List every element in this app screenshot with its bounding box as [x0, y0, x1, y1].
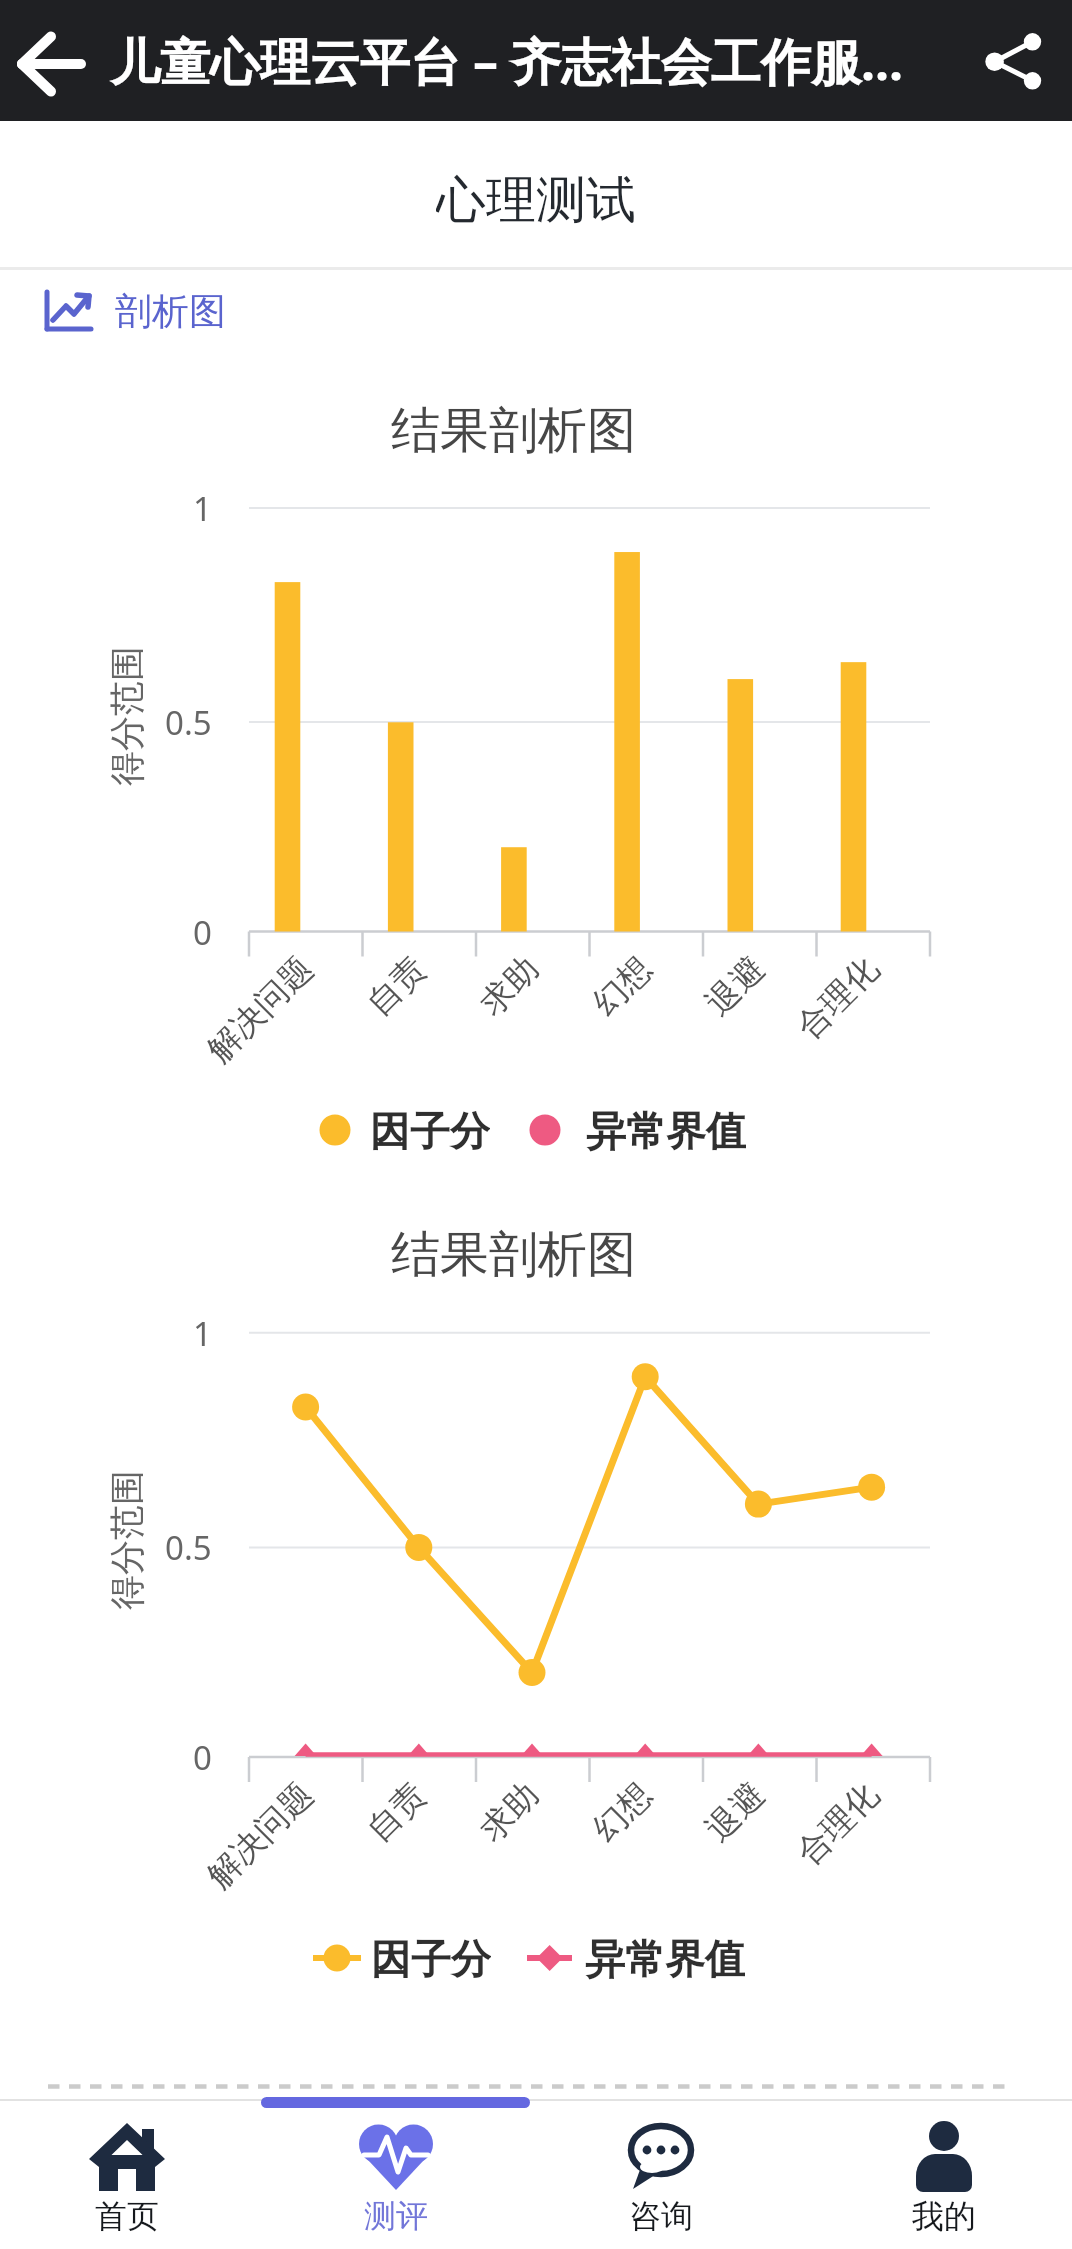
staticText: 退避 [697, 948, 772, 1023]
staticText: 结果剖析图 [391, 400, 636, 456]
button[interactable]: 测评 [268, 2102, 536, 2249]
button[interactable] [970, 18, 1060, 106]
staticText: 咨询 [629, 2196, 693, 2236]
staticText: 退避 [697, 1774, 772, 1849]
staticText: 结果剖析图 [391, 1224, 636, 1280]
staticText: 幻想 [584, 948, 659, 1023]
staticText: 首页 [95, 2196, 159, 2236]
staticText: 幻想 [584, 1774, 659, 1849]
button[interactable]: 剖析图 [30, 282, 236, 340]
staticText: 求助 [471, 1774, 546, 1849]
staticText: 合理化 [788, 948, 886, 1046]
staticText: 自责 [358, 948, 433, 1023]
button[interactable]: 我的 [804, 2102, 1072, 2249]
staticText: 异常界值 [586, 1106, 746, 1154]
button[interactable]: 咨询 [536, 2102, 804, 2249]
staticText: 0.5 [165, 700, 212, 745]
staticText: 解决问题 [198, 1774, 320, 1895]
staticText: 得分范围 [105, 1470, 149, 1610]
staticText: 解决问题 [198, 948, 320, 1069]
staticText: 合理化 [788, 1774, 886, 1872]
staticText: 求助 [471, 948, 546, 1023]
button[interactable]: 首页 [0, 2102, 268, 2249]
staticText: 0.5 [165, 1525, 212, 1570]
staticText: 0 [193, 910, 212, 955]
button[interactable] [8, 22, 98, 102]
staticText: 我的 [912, 2196, 976, 2236]
staticText: 儿童心理云平台 – 齐志社会工作服... [110, 27, 904, 95]
staticText: 得分范围 [105, 646, 149, 786]
staticText: 因子分 [370, 1106, 490, 1154]
staticText: 1 [193, 1311, 212, 1356]
staticText: 1 [193, 486, 212, 531]
staticText: 0 [193, 1735, 212, 1780]
staticText: 心理测试 [436, 169, 636, 231]
staticText: 因子分 [371, 1934, 491, 1982]
staticText: 剖析图 [115, 288, 226, 335]
staticText: 异常界值 [585, 1934, 745, 1982]
staticText: 测评 [364, 2196, 428, 2236]
staticText: 自责 [358, 1774, 433, 1849]
